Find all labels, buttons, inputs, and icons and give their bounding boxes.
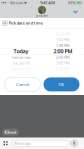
staticText: 81% [68,0,75,5]
button[interactable]: Back [2,128,19,136]
staticText: Tomorrow [11,54,30,60]
staticText: 2:00 PM [53,48,72,55]
button[interactable]: Apps [1,139,10,148]
staticText: Sun, Jun 11 [12,66,30,71]
button[interactable]: Record audio [70,139,78,147]
staticText: Today [13,48,28,55]
staticText: 3:30 PM [56,66,70,71]
button[interactable]: iMessage [11,140,68,146]
staticText: 9:41 AM [40,0,55,5]
staticText: Sat, Jun 10 [12,60,29,65]
staticText: 2:30 PM [56,54,70,60]
staticText: 1:30 PM [56,43,70,48]
staticText: OK [58,82,64,87]
staticText: Cancel [16,82,29,87]
staticText: Verizon [10,0,23,5]
button[interactable]: OK [43,77,79,91]
staticText: iMessage [14,141,31,146]
staticText: 3:00 PM [56,60,70,65]
staticText: 12:30 PM [55,31,71,36]
staticText: Jennifer [36,14,48,18]
staticText: Back [7,129,16,135]
staticText: Pick date and time [9,20,43,26]
staticText: 1:00 PM [56,37,70,42]
button[interactable]: Cancel [4,77,40,91]
button[interactable]: Collapse app [71,8,79,16]
